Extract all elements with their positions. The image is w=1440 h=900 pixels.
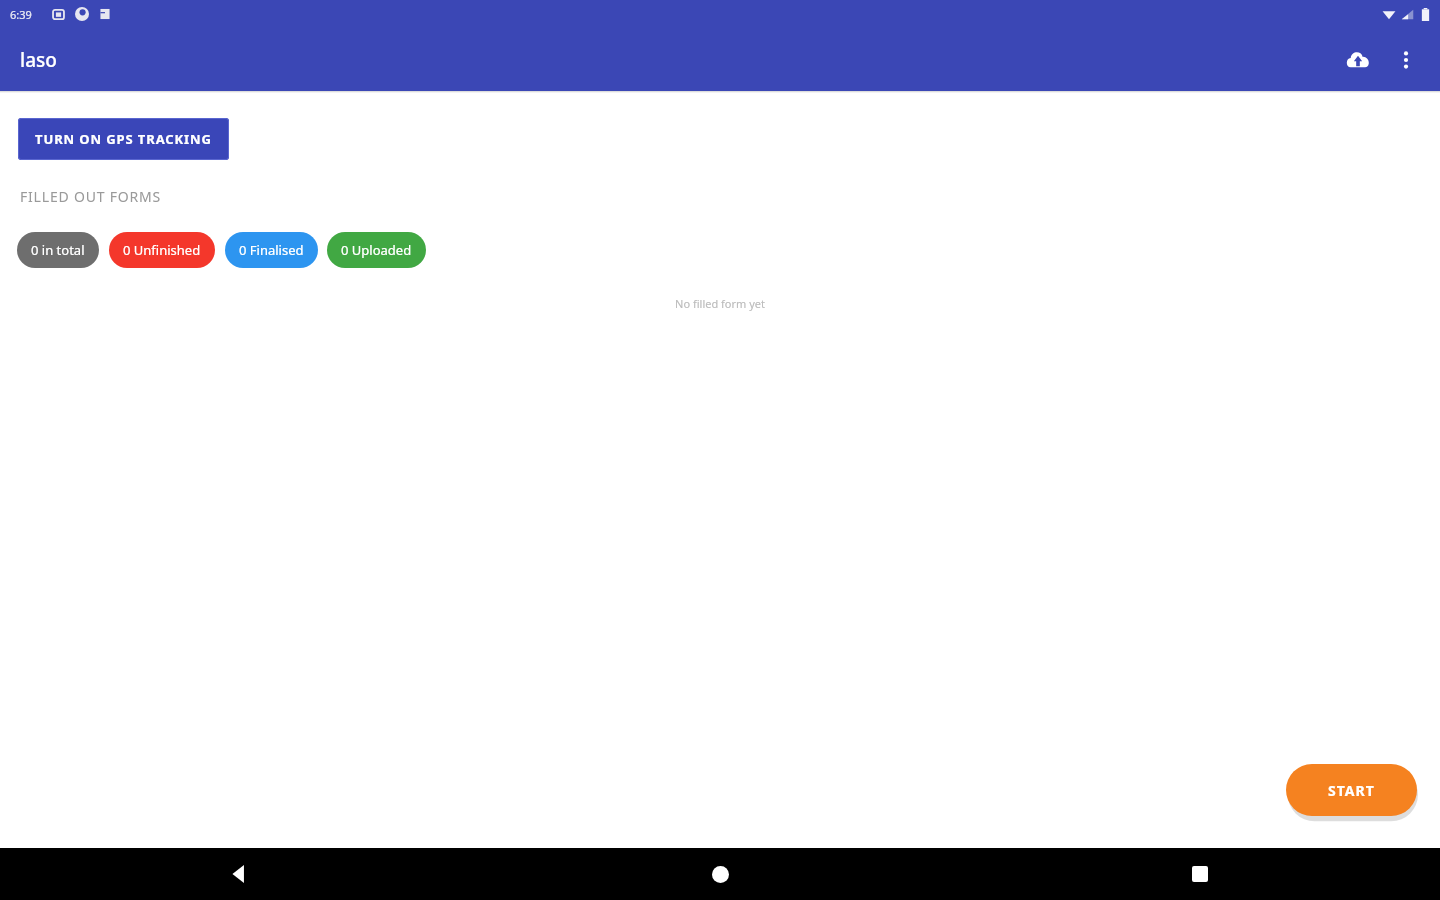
staticText: 0 in total: [31, 241, 85, 259]
staticText: FILLED OUT FORMS: [20, 187, 162, 206]
staticText: TURN ON GPS TRACKING: [35, 130, 212, 148]
staticText: 0 Uploaded: [341, 241, 412, 259]
staticText: 0 Unfinished: [123, 241, 201, 259]
button[interactable]: Upload to cloud: [1334, 36, 1382, 84]
staticText: 0 Finalised: [239, 241, 304, 259]
button[interactable]: More options: [1382, 36, 1430, 84]
button[interactable]: Home: [480, 848, 960, 900]
staticText: No filled form yet: [675, 296, 765, 311]
button[interactable]: Back: [0, 848, 480, 900]
staticText: 6:39: [10, 7, 32, 22]
button[interactable]: 0 Finalised: [225, 232, 318, 268]
staticText: laso: [20, 47, 57, 73]
button[interactable]: 0 in total: [17, 232, 99, 268]
staticText: START: [1328, 781, 1375, 800]
button[interactable]: TURN ON GPS TRACKING: [18, 118, 229, 160]
button[interactable]: START: [1286, 764, 1417, 816]
button[interactable]: 0 Unfinished: [109, 232, 215, 268]
button[interactable]: Recent apps: [960, 848, 1440, 900]
button[interactable]: 0 Uploaded: [327, 232, 426, 268]
